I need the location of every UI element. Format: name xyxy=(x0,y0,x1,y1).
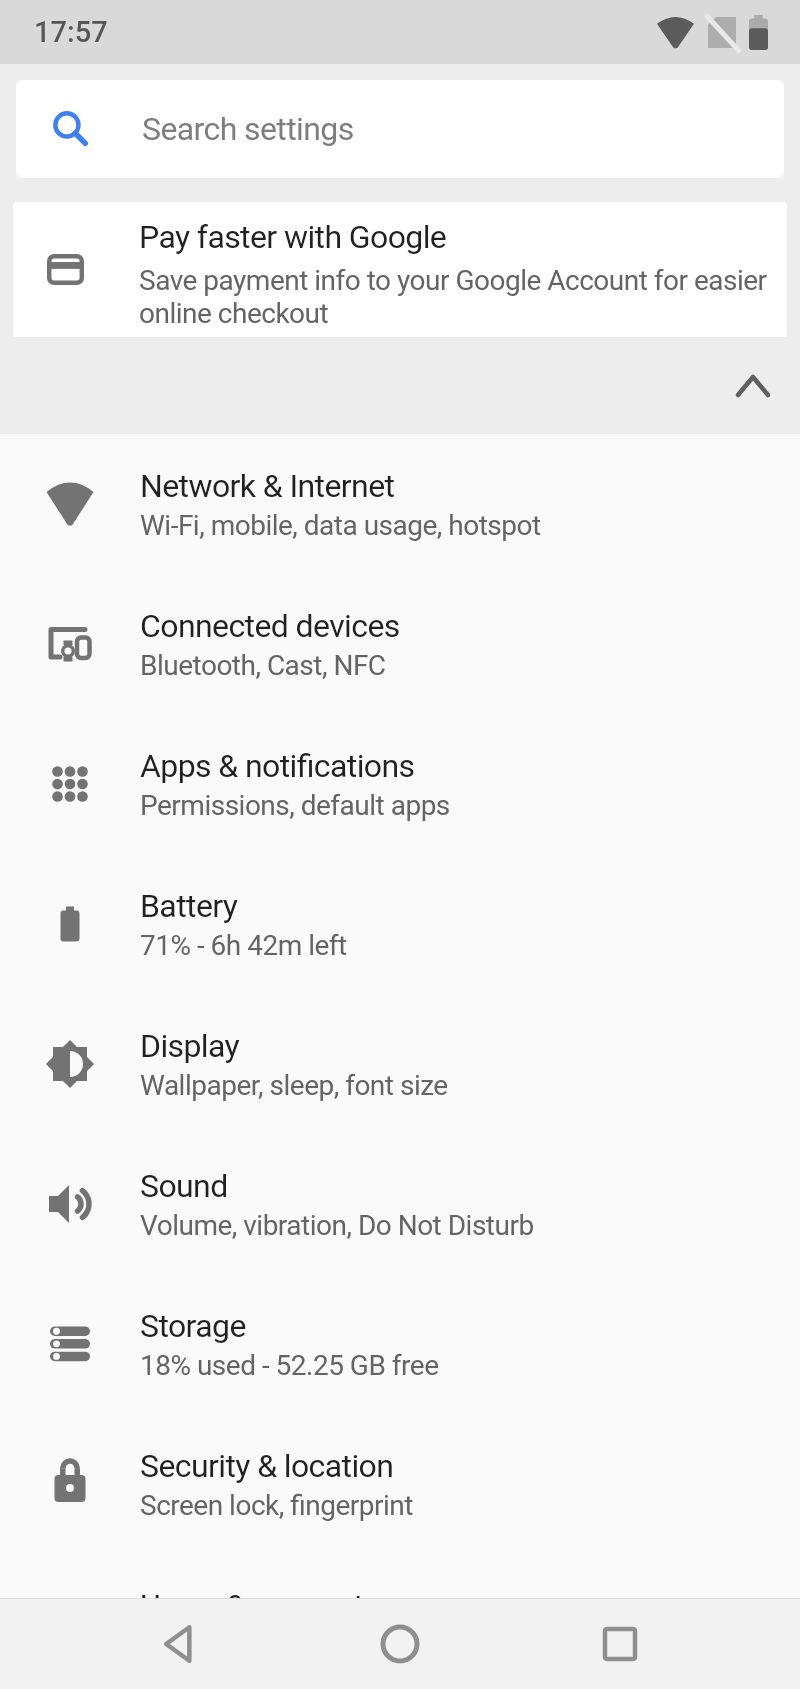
staticText: Sound xyxy=(140,1167,228,1205)
staticText: Pay faster with Google xyxy=(139,218,447,256)
button[interactable] xyxy=(143,1609,213,1679)
button[interactable]: Connected devices xyxy=(0,574,800,714)
button[interactable] xyxy=(365,1609,435,1679)
staticText: 18% used - 52.25 GB free xyxy=(140,1349,439,1382)
staticText: Display xyxy=(140,1027,240,1065)
button[interactable] xyxy=(585,1609,655,1679)
staticText: Wallpaper, sleep, font size xyxy=(140,1069,448,1102)
staticText: Users & accounts xyxy=(140,1587,380,1625)
staticText: Bluetooth, Cast, NFC xyxy=(140,649,386,682)
staticText: Security & location xyxy=(140,1447,394,1485)
button[interactable]: Network & Internet xyxy=(0,434,800,574)
button[interactable]: Search settings xyxy=(16,80,784,178)
staticText: Permissions, default apps xyxy=(140,789,450,822)
staticText: Battery xyxy=(140,887,238,925)
staticText: Current user: Owner xyxy=(140,1629,378,1662)
button[interactable] xyxy=(0,337,800,434)
staticText: Wi-Fi, mobile, data usage, hotspot xyxy=(140,509,541,542)
button[interactable]: Security & location xyxy=(0,1414,800,1554)
staticText: Network & Internet xyxy=(140,467,395,505)
staticText: Search settings xyxy=(142,110,354,148)
staticText: 17:57 xyxy=(34,15,108,49)
button[interactable]: Pay faster with Google xyxy=(13,202,787,337)
staticText: Connected devices xyxy=(140,607,400,645)
button[interactable]: Display xyxy=(0,994,800,1134)
staticText: Storage xyxy=(140,1307,246,1345)
staticText: Apps & notifications xyxy=(140,747,415,785)
staticText: 71% - 6h 42m left xyxy=(140,929,347,962)
button[interactable]: Storage xyxy=(0,1274,800,1414)
staticText: Screen lock, fingerprint xyxy=(140,1489,413,1522)
button[interactable]: Apps & notifications xyxy=(0,714,800,854)
staticText: Volume, vibration, Do Not Disturb xyxy=(140,1209,534,1242)
button[interactable]: Sound xyxy=(0,1134,800,1274)
button[interactable]: Users & accounts xyxy=(0,1557,800,1689)
staticText: Save payment info to your Google Account… xyxy=(139,264,767,330)
button[interactable]: Battery xyxy=(0,854,800,994)
